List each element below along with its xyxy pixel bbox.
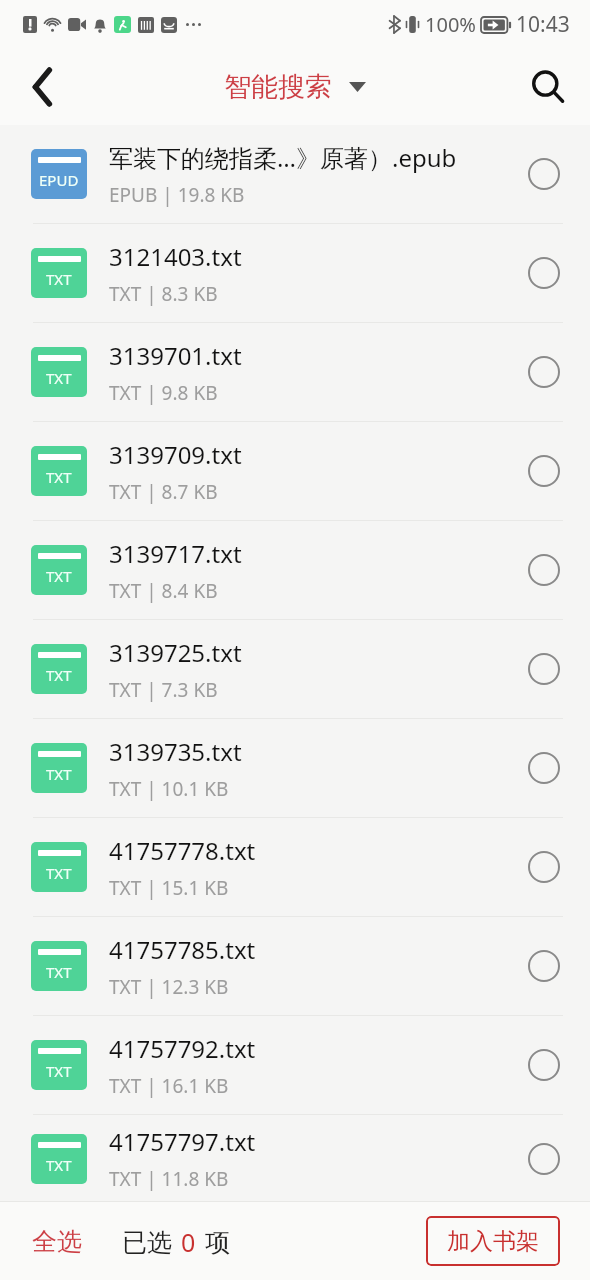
button[interactable]: TXT: [0, 818, 590, 916]
staticText: TXT | 12.3 KB: [109, 974, 229, 1000]
button[interactable]: TXT: [0, 521, 590, 619]
staticText: TXT: [46, 863, 72, 883]
button[interactable]: Select 3121403.txt: [510, 239, 578, 307]
staticText: 10:43: [516, 10, 570, 39]
staticText: 3139717.txt: [109, 537, 242, 570]
button[interactable]: TXT: [0, 917, 590, 1015]
staticText: 加入书架: [447, 1227, 539, 1256]
staticText: 100%: [425, 11, 476, 38]
button[interactable]: Back: [0, 48, 86, 125]
button[interactable]: 智能搜索: [224, 70, 366, 104]
staticText: 军装下的绕指柔…》原著）.epub: [109, 141, 457, 174]
staticText: TXT | 16.1 KB: [109, 1073, 229, 1099]
staticText: 41757785.txt: [109, 933, 256, 966]
staticText: TXT: [46, 665, 72, 685]
button[interactable]: TXT: [0, 620, 590, 718]
staticText: 41757792.txt: [109, 1032, 256, 1065]
staticText: 3139709.txt: [109, 438, 242, 471]
staticText: 智能搜索: [224, 70, 332, 104]
staticText: TXT | 15.1 KB: [109, 875, 229, 901]
button[interactable]: Select 41757778.txt: [510, 833, 578, 901]
button[interactable]: Select 3139709.txt: [510, 437, 578, 505]
staticText: 41757778.txt: [109, 834, 256, 867]
staticText: 已选: [122, 1227, 172, 1258]
button[interactable]: TXT: [0, 224, 590, 322]
staticText: TXT | 11.8 KB: [109, 1166, 229, 1192]
button[interactable]: TXT: [0, 1115, 590, 1202]
button[interactable]: EPUD: [0, 125, 590, 223]
button[interactable]: Select 41757797.txt: [510, 1125, 578, 1193]
staticText: TXT | 8.3 KB: [109, 281, 218, 307]
button[interactable]: Select 41757785.txt: [510, 932, 578, 1000]
staticText: TXT: [46, 566, 72, 586]
button[interactable]: Select 3139701.txt: [510, 338, 578, 406]
button[interactable]: 加入书架: [426, 1216, 560, 1266]
staticText: TXT: [46, 764, 72, 784]
staticText: 3139735.txt: [109, 735, 242, 768]
button[interactable]: TXT: [0, 422, 590, 520]
staticText: 0: [181, 1225, 196, 1259]
staticText: TXT: [46, 269, 72, 289]
button[interactable]: Select 3139725.txt: [510, 635, 578, 703]
staticText: 3139725.txt: [109, 636, 242, 669]
staticText: TXT: [46, 368, 72, 388]
staticText: TXT | 9.8 KB: [109, 380, 218, 406]
button[interactable]: Select 军装下的绕指柔…》原著）.epub: [510, 140, 578, 208]
button[interactable]: TXT: [0, 1016, 590, 1114]
staticText: EPUD: [39, 170, 79, 190]
staticText: TXT | 7.3 KB: [109, 677, 218, 703]
button[interactable]: TXT: [0, 323, 590, 421]
staticText: 3121403.txt: [109, 240, 242, 273]
staticText: TXT: [46, 1061, 72, 1081]
staticText: TXT: [46, 962, 72, 982]
staticText: TXT | 8.4 KB: [109, 578, 218, 604]
button[interactable]: TXT: [0, 719, 590, 817]
button[interactable]: Select 41757792.txt: [510, 1031, 578, 1099]
staticText: 3139701.txt: [109, 339, 242, 372]
staticText: 项: [205, 1227, 230, 1258]
button[interactable]: Select 3139735.txt: [510, 734, 578, 802]
button[interactable]: Select 3139717.txt: [510, 536, 578, 604]
button[interactable]: Search: [506, 48, 590, 125]
staticText: TXT | 10.1 KB: [109, 776, 229, 802]
staticText: EPUB | 19.8 KB: [109, 182, 245, 208]
staticText: 全选: [32, 1226, 82, 1257]
staticText: TXT: [46, 467, 72, 487]
staticText: TXT: [46, 1155, 72, 1175]
button[interactable]: 全选: [26, 1218, 88, 1265]
staticText: TXT | 8.7 KB: [109, 479, 218, 505]
staticText: 41757797.txt: [109, 1125, 256, 1158]
